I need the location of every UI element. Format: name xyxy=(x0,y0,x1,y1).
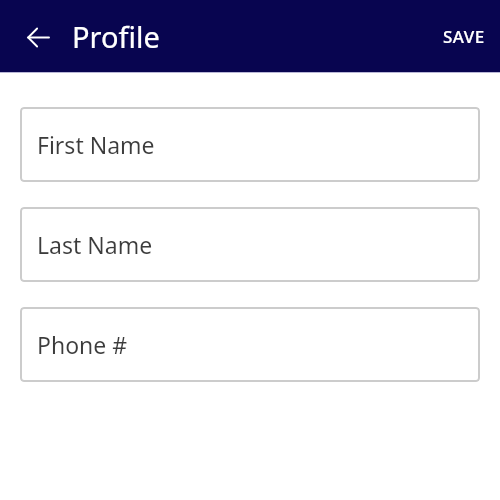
staticText: SAVE xyxy=(443,25,485,48)
button[interactable]: Back xyxy=(18,17,58,57)
staticText: First Name xyxy=(37,129,155,160)
button[interactable]: First Name xyxy=(20,107,480,182)
staticText: Profile xyxy=(72,17,160,56)
button[interactable]: SAVE xyxy=(428,15,500,58)
staticText: Last Name xyxy=(37,229,153,260)
staticText: Phone # xyxy=(37,329,128,360)
button[interactable]: Last Name xyxy=(20,207,480,282)
button[interactable]: Phone # xyxy=(20,307,480,382)
